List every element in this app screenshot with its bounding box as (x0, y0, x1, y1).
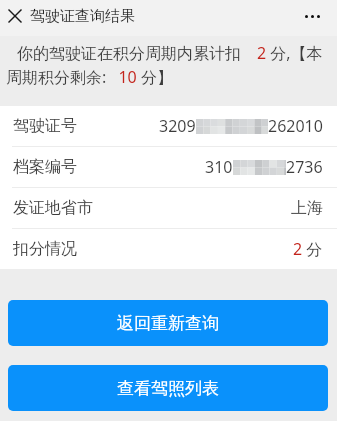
button[interactable]: 扣分情况 (0, 229, 337, 269)
staticText: 驾驶证号 (13, 116, 77, 136)
staticText: 3209 (159, 115, 196, 137)
staticText: 上海 (291, 198, 323, 218)
staticText: 扣分情况 (13, 239, 77, 259)
staticText: 你的驾驶证在积分周期内累计扣 2 分,【本 (17, 42, 323, 62)
staticText: 周期积分剩余: 10 分】 (6, 66, 173, 86)
staticText: 262010 (268, 115, 323, 137)
button[interactable]: 发证地省市 (0, 188, 337, 228)
button[interactable]: More options (300, 4, 324, 28)
staticText: 2 分 (293, 238, 323, 260)
staticText: 发证地省市 (13, 198, 93, 218)
staticText: 310 (205, 156, 233, 178)
button[interactable]: 档案编号 (0, 147, 337, 187)
button[interactable]: 驾驶证号 (0, 106, 337, 146)
staticText: 查看驾照列表 (117, 378, 219, 399)
staticText: 2736 (286, 156, 323, 178)
button[interactable]: 查看驾照列表 (8, 365, 328, 411)
button[interactable]: 返回重新查询 (8, 300, 328, 346)
staticText: 返回重新查询 (117, 313, 219, 334)
staticText: 档案编号 (13, 157, 77, 177)
staticText: 驾驶证查询结果 (30, 7, 135, 26)
button[interactable]: Close (3, 4, 27, 28)
